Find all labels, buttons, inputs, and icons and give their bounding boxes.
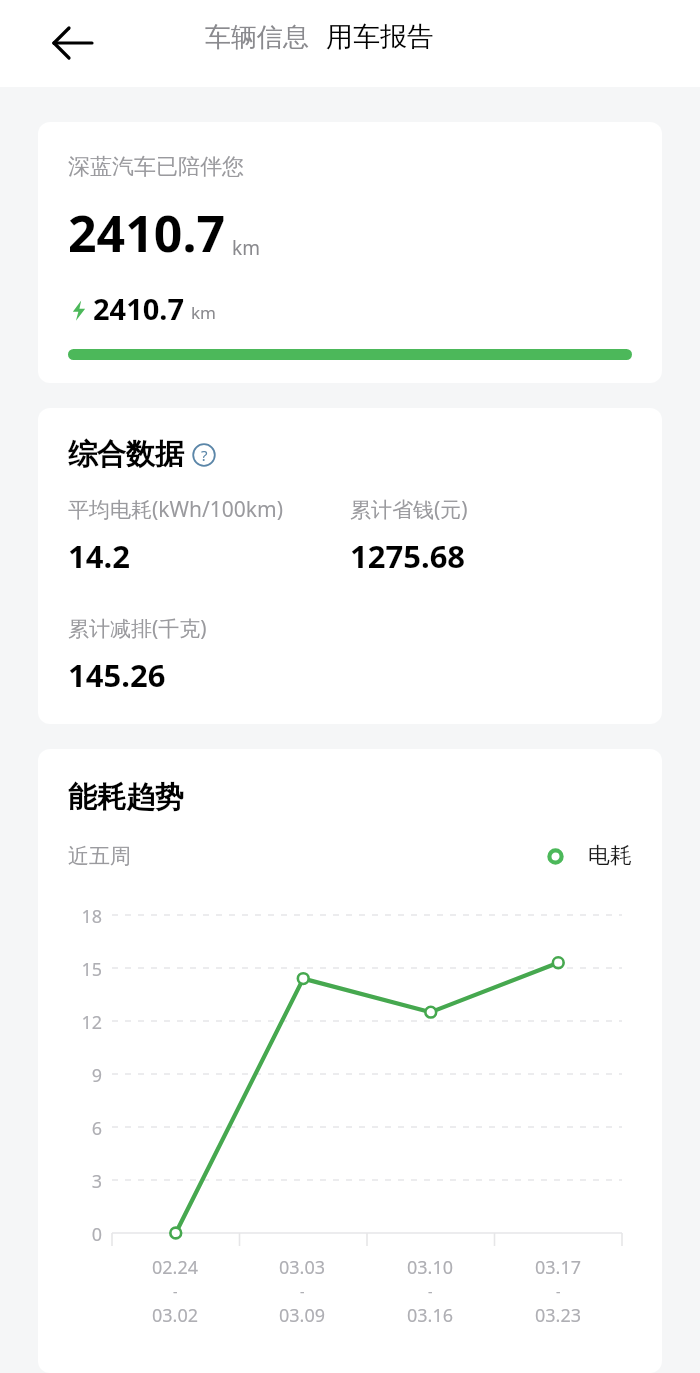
staticText: 03.23 bbox=[535, 1303, 582, 1328]
staticText: 累计省钱(元) bbox=[350, 495, 468, 524]
staticText: 03.03 bbox=[279, 1255, 326, 1280]
staticText: 深蓝汽车已陪伴您 bbox=[68, 153, 244, 181]
staticText: 145.26 bbox=[68, 654, 166, 696]
staticText: ? bbox=[201, 445, 208, 465]
staticText: 15 bbox=[68, 957, 102, 982]
staticText: 03.10 bbox=[407, 1255, 454, 1280]
staticText: km bbox=[191, 301, 216, 324]
staticText: 车辆信息 bbox=[205, 21, 309, 54]
staticText: 累计减排(千克) bbox=[68, 614, 207, 643]
staticText: 用车报告 bbox=[326, 20, 434, 54]
staticText: - bbox=[300, 1282, 305, 1301]
staticText: 02.24 bbox=[152, 1255, 199, 1280]
button[interactable]: 用车报告 bbox=[326, 20, 434, 54]
staticText: 03.02 bbox=[152, 1303, 199, 1328]
staticText: 03.17 bbox=[535, 1255, 582, 1280]
staticText: 2410.7 bbox=[68, 199, 226, 267]
staticText: - bbox=[428, 1282, 433, 1301]
staticText: 14.2 bbox=[68, 535, 130, 577]
button[interactable]: 车辆信息 bbox=[205, 21, 309, 54]
staticText: - bbox=[173, 1282, 178, 1301]
staticText: 18 bbox=[68, 904, 102, 929]
staticText: 平均电耗(kWh/100km) bbox=[68, 495, 284, 524]
staticText: 能耗趋势 bbox=[68, 779, 184, 816]
button[interactable]: Back bbox=[43, 13, 103, 73]
staticText: 6 bbox=[68, 1116, 102, 1141]
staticText: 9 bbox=[68, 1063, 102, 1088]
staticText: 0 bbox=[68, 1222, 102, 1247]
staticText: 12 bbox=[68, 1010, 102, 1035]
staticText: km bbox=[232, 235, 260, 261]
button[interactable]: Help bbox=[192, 443, 216, 467]
staticText: 1275.68 bbox=[350, 535, 466, 577]
staticText: 2410.7 bbox=[93, 289, 185, 328]
staticText: 03.16 bbox=[407, 1303, 454, 1328]
staticText: - bbox=[556, 1282, 561, 1301]
staticText: 03.09 bbox=[279, 1303, 326, 1328]
staticText: 3 bbox=[68, 1169, 102, 1194]
staticText: 近五周 bbox=[68, 843, 131, 869]
staticText: 综合数据 bbox=[68, 436, 184, 473]
button[interactable]: 电耗 bbox=[547, 842, 632, 870]
staticText: 电耗 bbox=[588, 842, 632, 870]
